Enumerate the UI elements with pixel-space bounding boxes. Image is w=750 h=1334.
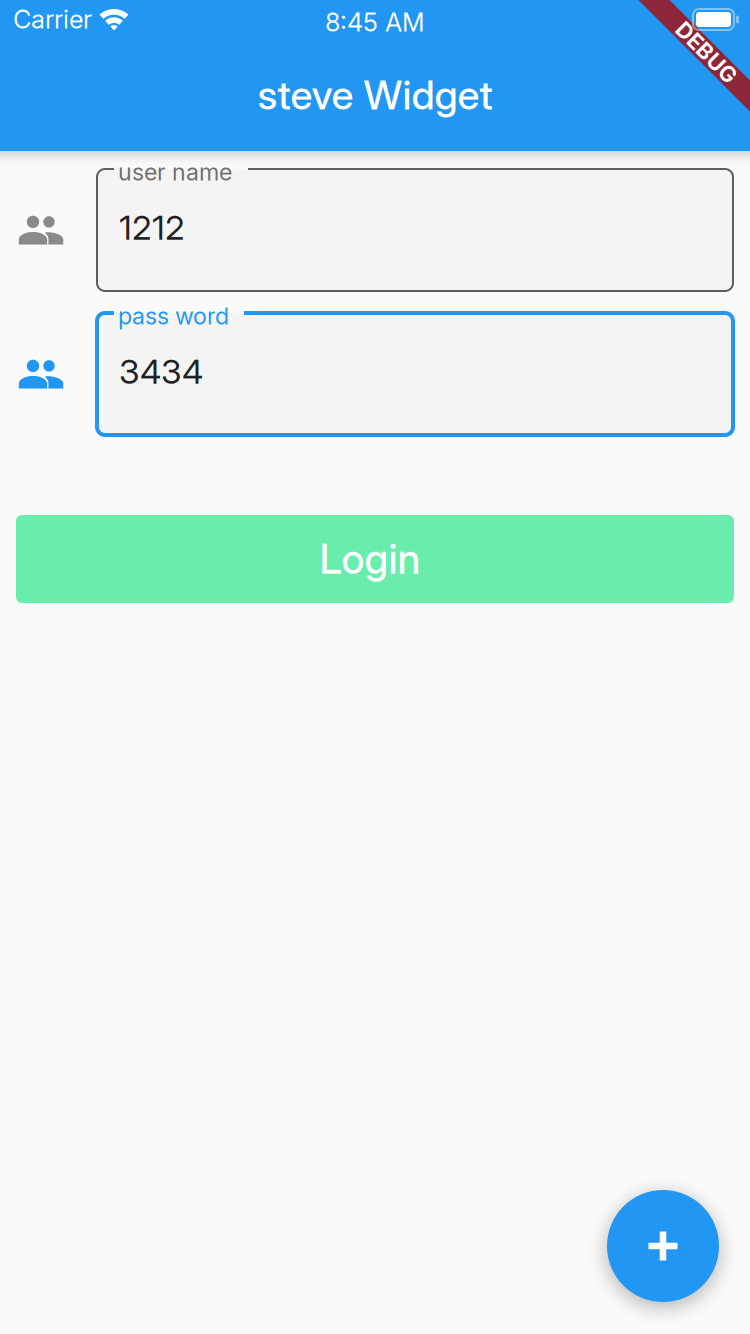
button[interactable]: Login — [16, 515, 734, 603]
staticText: Login — [319, 534, 420, 584]
staticText: 1212 — [119, 207, 185, 248]
staticText: pass word — [118, 302, 229, 330]
staticText: Carrier — [13, 4, 92, 35]
staticText: 8:45 AM — [325, 7, 425, 38]
button[interactable]: user name — [97, 169, 733, 291]
staticText: 3434 — [119, 351, 203, 392]
button[interactable]: Add — [607, 1190, 719, 1302]
staticText: DEBUG — [670, 35, 746, 61]
button[interactable]: pass word — [97, 313, 733, 435]
staticText: user name — [118, 158, 232, 186]
staticText: steve Widget — [257, 71, 492, 119]
